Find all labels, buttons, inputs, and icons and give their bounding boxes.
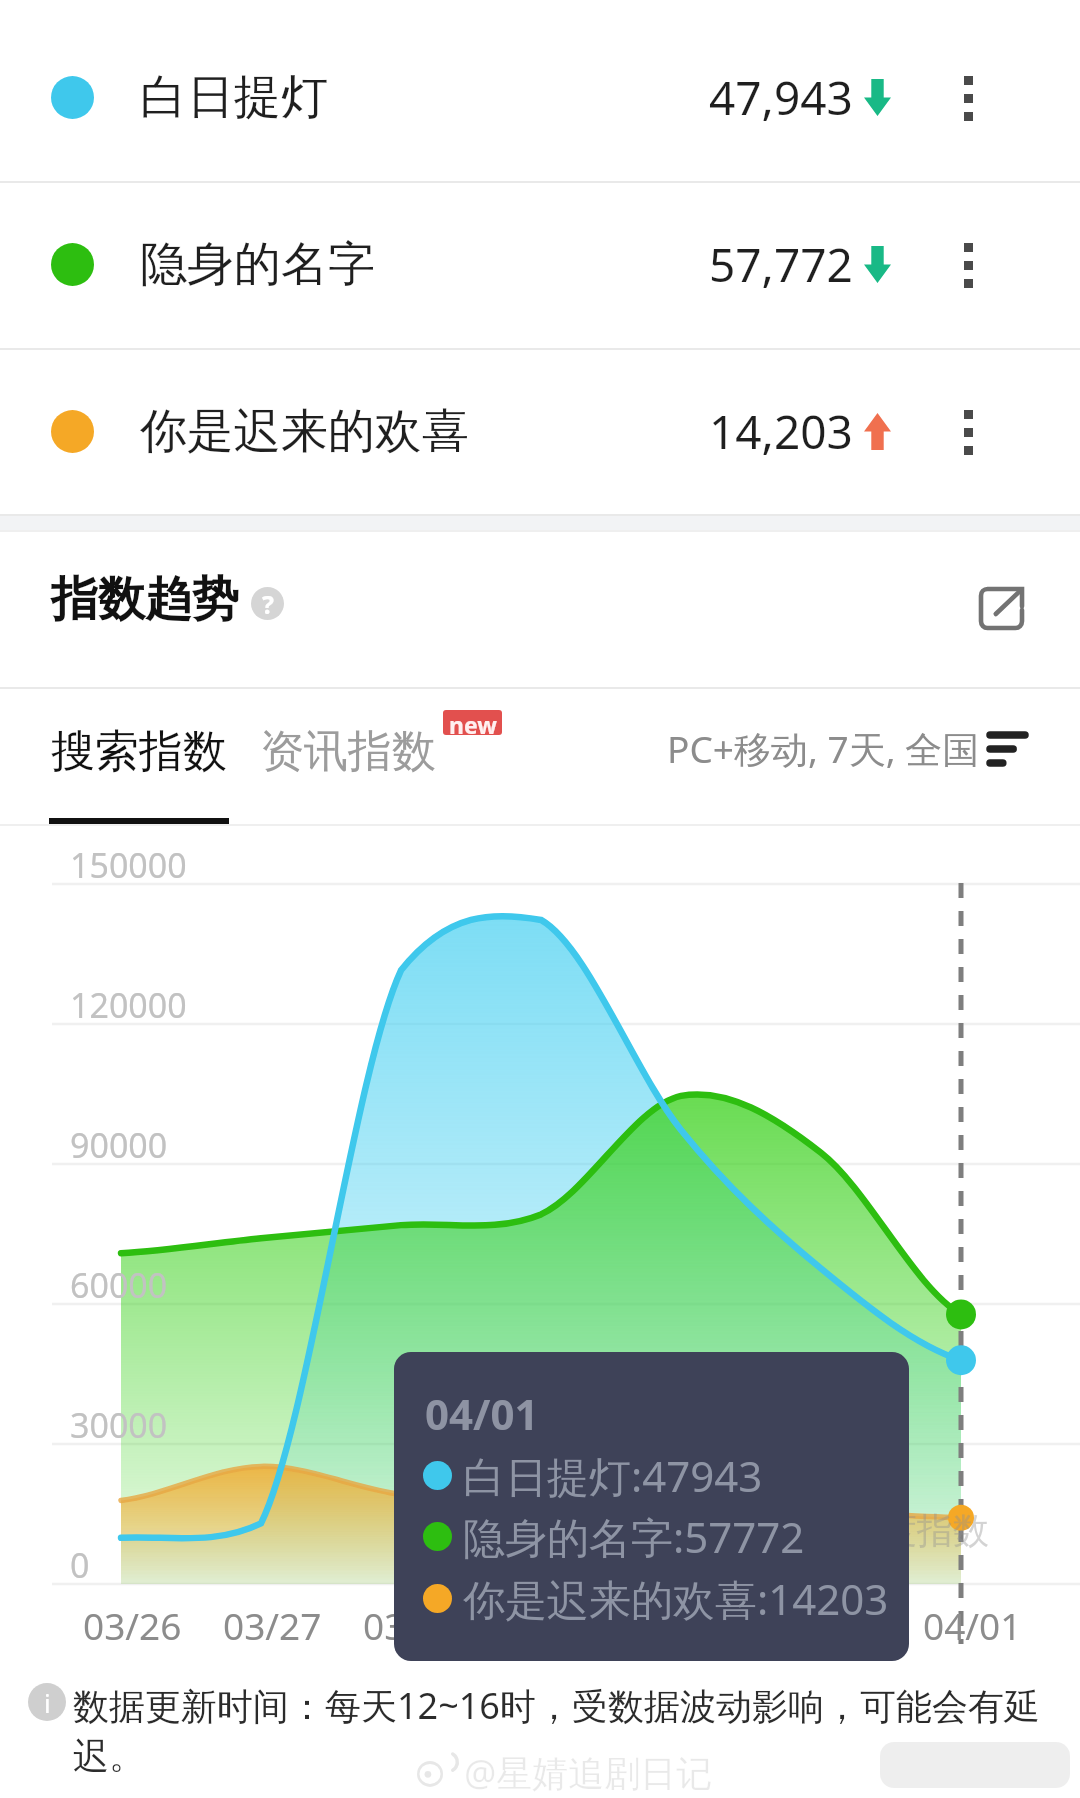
staticText: 白日提灯 bbox=[140, 68, 328, 127]
staticText: 0 bbox=[70, 1542, 90, 1588]
staticText: 03/31 bbox=[783, 1600, 882, 1650]
staticText: 你是迟来的欢喜 bbox=[140, 402, 469, 461]
button[interactable]: 你是迟来的欢喜 bbox=[0, 348, 1080, 515]
button[interactable]: 白日提灯 bbox=[0, 14, 1080, 181]
staticText: 03/27 bbox=[223, 1600, 322, 1650]
button[interactable]: 隐身的名字 bbox=[0, 181, 1080, 348]
button[interactable]: 搜索指数 bbox=[40, 709, 240, 779]
button[interactable]: 指数趋势 bbox=[51, 570, 239, 629]
staticText: 60000 bbox=[70, 1262, 168, 1308]
staticText: 迟。 bbox=[73, 1733, 145, 1778]
staticText: 你是迟来的欢喜:14203 bbox=[463, 1570, 889, 1627]
staticText: 14,203 bbox=[709, 400, 853, 463]
staticText: 120000 bbox=[70, 982, 187, 1028]
staticText: 04/01 bbox=[923, 1600, 1022, 1650]
button[interactable]: Open in browser bbox=[961, 568, 1041, 648]
staticText: 百度指数 bbox=[845, 1508, 989, 1553]
staticText: i bbox=[44, 1685, 51, 1720]
staticText: ? bbox=[262, 587, 274, 620]
staticText: 隐身的名字:57772 bbox=[463, 1508, 805, 1565]
staticText: 白日提灯:47943 bbox=[463, 1447, 763, 1504]
button[interactable]: PC+移动, 7天, 全国 bbox=[667, 723, 1025, 774]
button[interactable]: More options bbox=[923, 38, 1013, 158]
button[interactable]: More options bbox=[923, 205, 1013, 325]
staticText: 03/29 bbox=[503, 1600, 602, 1650]
button[interactable]: Help bbox=[251, 587, 284, 620]
staticText: 资讯指数 bbox=[260, 724, 436, 779]
staticText: new bbox=[449, 710, 497, 734]
staticText: @星婧追剧日记 bbox=[464, 1748, 713, 1797]
staticText: 90000 bbox=[70, 1122, 168, 1168]
staticText: 搜索指数 bbox=[51, 724, 227, 779]
staticText: 03/30 bbox=[643, 1600, 742, 1650]
staticText: 30000 bbox=[70, 1402, 168, 1448]
staticText: 47,943 bbox=[709, 66, 853, 129]
staticText: 隐身的名字 bbox=[140, 235, 375, 294]
staticText: 03/28 bbox=[363, 1600, 462, 1650]
staticText: 04/01 bbox=[425, 1385, 539, 1442]
staticText: PC+移动, 7天, 全国 bbox=[667, 723, 980, 774]
staticText: 57,772 bbox=[709, 233, 853, 296]
button[interactable]: 资讯指数 bbox=[250, 709, 450, 779]
button[interactable]: More options bbox=[923, 372, 1013, 492]
staticText: 数据更新时间：每天12~16时，受数据波动影响，可能会有延 bbox=[73, 1681, 1040, 1730]
staticText: 03/26 bbox=[83, 1600, 182, 1650]
staticText: 150000 bbox=[70, 842, 187, 888]
